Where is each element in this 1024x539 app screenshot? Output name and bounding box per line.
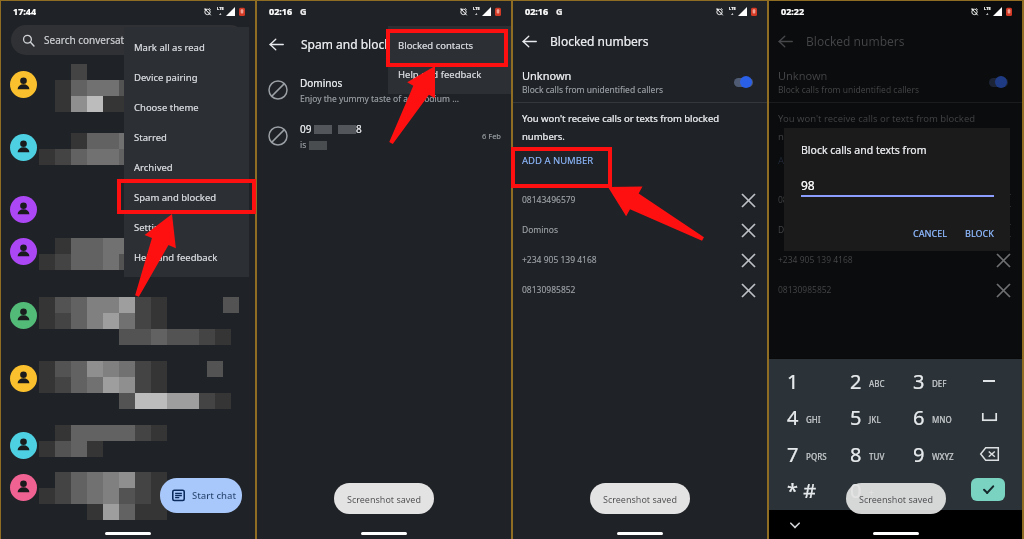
staticText: Block calls from unidentified callers <box>522 84 663 96</box>
staticText: Enjoy the yummy taste of an...sodium ... <box>300 93 460 105</box>
button[interactable]: Unknown <box>769 67 1022 97</box>
button[interactable]: 9 <box>893 436 953 472</box>
button[interactable]: +234 905 139 4168 <box>513 245 767 275</box>
button[interactable]: BLOCK <box>965 227 994 239</box>
button[interactable]: Start chat <box>160 478 242 513</box>
staticText: 6 <box>913 404 925 431</box>
staticText: Screenshot saved <box>347 493 421 505</box>
staticText: ADD A NUMBER <box>522 154 594 167</box>
button[interactable]: Dominos <box>513 215 767 245</box>
staticText: + <box>731 11 734 16</box>
button[interactable]: Mark all as read <box>124 32 249 62</box>
button[interactable]: Back <box>778 34 793 49</box>
button[interactable]: 08143496579 <box>769 185 1022 215</box>
button[interactable]: 6 <box>893 399 953 435</box>
staticText: + <box>219 11 222 16</box>
button[interactable]: Help and feedback <box>124 242 249 272</box>
button[interactable]: Choose theme <box>124 92 249 122</box>
other: Remove <box>997 254 1010 267</box>
button[interactable]: Confirm <box>971 478 1005 501</box>
staticText: 17:44 <box>13 5 37 17</box>
staticText: Choose theme <box>134 101 199 114</box>
staticText: Unknown <box>522 68 572 83</box>
staticText: GHI <box>806 414 821 425</box>
button[interactable]: Archived <box>124 152 249 182</box>
staticText: 0 <box>850 477 862 504</box>
button[interactable]: CANCEL <box>913 227 948 239</box>
button[interactable]: 7 <box>767 436 827 472</box>
staticText: ABC <box>869 378 885 389</box>
button[interactable]: Back <box>269 37 284 52</box>
button[interactable]: Help and feedback <box>388 60 511 89</box>
other: Remove <box>742 224 755 237</box>
button[interactable]: ADD A NUMBER <box>522 154 594 167</box>
button[interactable]: Dominos <box>257 68 511 112</box>
staticText: Block calls from unidentified callers <box>778 84 919 96</box>
button[interactable]: Search <box>11 25 245 55</box>
button[interactable]: Device pairing <box>124 62 249 92</box>
button[interactable]: 2 <box>830 363 890 399</box>
button[interactable]: 0 <box>830 472 890 508</box>
staticText: 4 <box>787 404 799 431</box>
staticText: 8 <box>850 441 862 468</box>
button[interactable]: 08143496579 <box>513 185 767 215</box>
button[interactable] <box>1 121 255 173</box>
button[interactable]: 5 <box>830 399 890 435</box>
button[interactable]: 3 <box>893 363 953 399</box>
staticText: Dominos <box>778 224 814 236</box>
button[interactable] <box>733 75 757 89</box>
button[interactable]: Dominos <box>769 215 1022 245</box>
staticText: LTE <box>217 6 224 11</box>
staticText: + <box>986 11 989 16</box>
staticText: Blocked numbers <box>550 33 649 49</box>
button[interactable] <box>1 461 255 513</box>
staticText: * # <box>787 477 817 504</box>
button[interactable]: ADD A NUMBER <box>778 154 850 167</box>
staticText: DEF <box>932 378 947 389</box>
button[interactable]: 08130985852 <box>513 275 767 305</box>
button[interactable]: Dash <box>973 367 1005 395</box>
button[interactable]: Back <box>522 34 537 49</box>
staticText: You won't receive calls or texts from bl… <box>778 112 976 143</box>
button[interactable]: Starred <box>124 122 249 152</box>
button[interactable]: 08130985852 <box>769 275 1022 305</box>
staticText: WXYZ <box>932 451 954 462</box>
staticText: Archived <box>134 161 173 174</box>
staticText: 6 Feb <box>482 131 501 141</box>
button[interactable]: 1 <box>767 363 827 399</box>
button[interactable] <box>1 58 255 110</box>
staticText: Screenshot saved <box>859 493 933 505</box>
staticText: JKL <box>869 414 881 425</box>
other: Search <box>22 34 35 47</box>
button[interactable] <box>988 75 1012 89</box>
staticText: ADD A NUMBER <box>778 154 850 167</box>
button[interactable] <box>1 225 255 277</box>
button[interactable] <box>1 352 255 404</box>
button[interactable]: Spam and blocked <box>124 182 249 212</box>
staticText: 5 <box>850 404 862 431</box>
staticText: Search conversati <box>44 33 127 47</box>
button[interactable]: Space <box>973 403 1005 431</box>
staticText: 08143496579 <box>522 194 576 206</box>
button[interactable]: Blocked contacts <box>388 31 511 60</box>
button[interactable]: Settings <box>124 212 249 242</box>
button[interactable]: * # <box>767 472 827 508</box>
button[interactable] <box>1 289 255 341</box>
button[interactable]: Backspace <box>973 440 1005 468</box>
button[interactable] <box>1 183 255 235</box>
staticText: Device pairing <box>134 71 198 84</box>
staticText: BLOCK <box>965 227 994 239</box>
button[interactable]: 4 <box>767 399 827 435</box>
button[interactable]: 09 <box>257 114 511 158</box>
staticText: 02:16 <box>525 5 549 17</box>
other: Remove <box>742 194 755 207</box>
button[interactable]: 8 <box>830 436 890 472</box>
staticText: Blocked numbers <box>806 33 905 49</box>
staticText: 9 <box>913 441 925 468</box>
button[interactable]: Unknown <box>513 67 767 97</box>
button[interactable]: +234 905 139 4168 <box>769 245 1022 275</box>
staticText: Spam and block <box>301 36 391 52</box>
button[interactable] <box>1 419 255 471</box>
